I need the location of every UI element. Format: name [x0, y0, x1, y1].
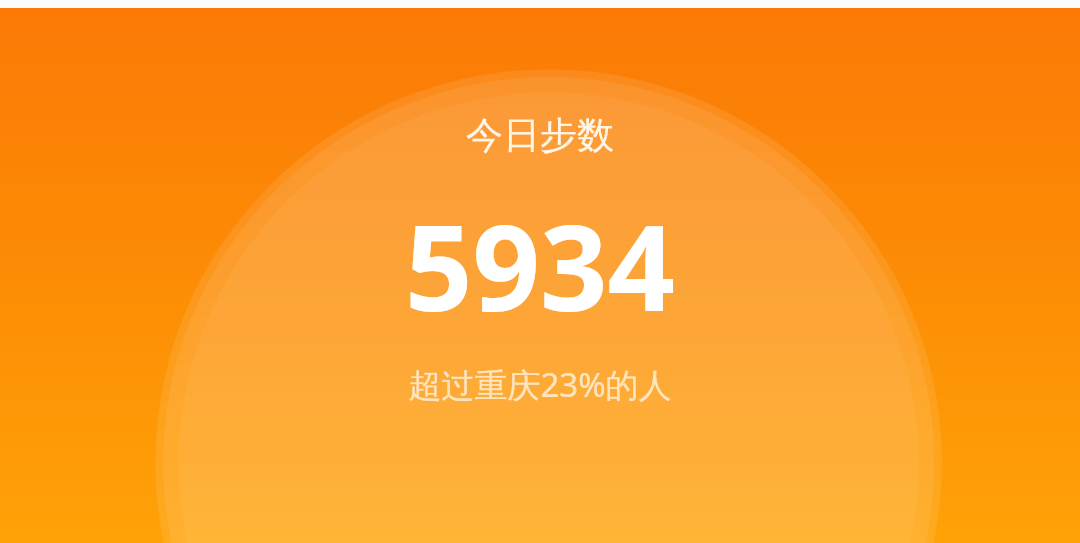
button[interactable]: 今日步数统计: [0, 8, 1080, 543]
staticText: 今日步数: [466, 112, 614, 159]
staticText: 5934: [405, 185, 675, 346]
staticText: 超过重庆23%的人: [408, 362, 672, 407]
